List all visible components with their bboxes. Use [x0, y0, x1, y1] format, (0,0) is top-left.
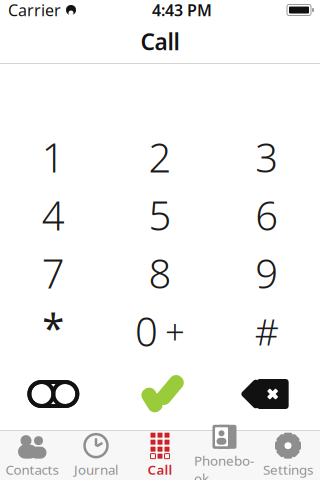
staticText: * [42, 300, 64, 353]
button[interactable]: 6 [213, 186, 320, 244]
staticText: 4:43 PM [152, 0, 212, 21]
staticText: 1 [42, 130, 65, 183]
staticText: 4 [42, 188, 65, 241]
staticText: Journal [74, 461, 118, 478]
button[interactable]: 7 [0, 244, 107, 302]
staticText: Contacts [5, 461, 58, 478]
button[interactable]: 4 [0, 186, 107, 244]
staticText: Call [140, 26, 179, 56]
button[interactable]: # [213, 302, 320, 360]
staticText: + [165, 308, 185, 354]
staticText: 5 [148, 188, 171, 241]
button[interactable]: 9 [213, 244, 320, 302]
button[interactable]: 1 [0, 128, 107, 186]
button[interactable]: 3 [213, 128, 320, 186]
button[interactable]: Call [107, 370, 213, 418]
button[interactable]: Call [128, 431, 192, 480]
button[interactable]: Settings [256, 431, 320, 480]
staticText: 0 [135, 304, 158, 357]
staticText: Call [147, 461, 172, 478]
button[interactable]: 2 [107, 128, 213, 186]
button[interactable]: 8 [107, 244, 213, 302]
staticText: 7 [42, 246, 65, 299]
staticText: # [255, 306, 279, 356]
staticText: Carrier [8, 0, 61, 21]
button[interactable]: Journal [64, 431, 128, 480]
staticText: 9 [255, 246, 278, 299]
button[interactable]: 0 [107, 302, 213, 360]
button[interactable]: Delete [213, 370, 320, 418]
staticText: 6 [255, 188, 278, 241]
staticText: 2 [148, 130, 171, 183]
button[interactable]: 5 [107, 186, 213, 244]
staticText: 8 [148, 246, 171, 299]
button[interactable]: Voicemail [0, 370, 107, 418]
staticText: Settings [263, 461, 313, 478]
staticText: Phonebook [194, 452, 254, 480]
button[interactable]: Phonebook [192, 431, 256, 480]
button[interactable]: Contacts [0, 431, 64, 480]
button[interactable]: * [0, 298, 107, 364]
staticText: 3 [255, 130, 278, 183]
